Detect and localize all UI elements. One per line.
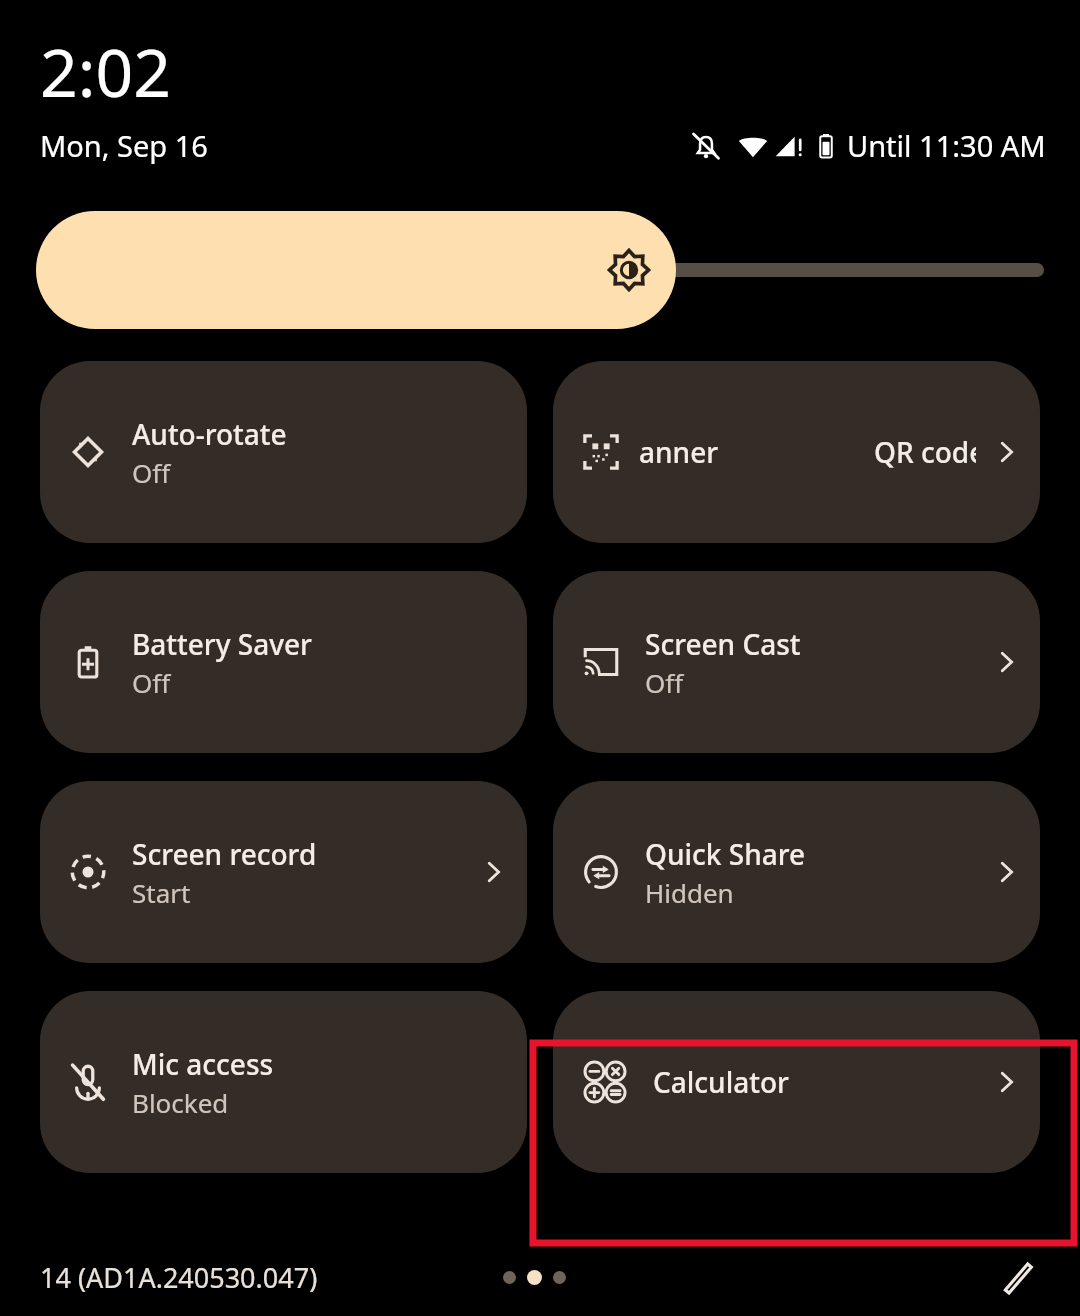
button[interactable]: Mic access	[40, 991, 527, 1173]
staticText: anner	[639, 433, 719, 471]
other: Battery	[811, 131, 841, 161]
staticText: Quick Share	[645, 835, 806, 873]
staticText: Mon, Sep 16	[40, 126, 208, 165]
staticText: QR code	[874, 433, 976, 471]
other: Mobile signal	[773, 130, 805, 162]
other: Open QR code scanner settings	[990, 436, 1022, 468]
other: Wi-Fi connected	[737, 130, 769, 162]
button[interactable]: Edit tiles	[998, 1257, 1038, 1297]
button[interactable]: Screen record	[40, 781, 527, 963]
staticText: Off	[132, 665, 171, 700]
staticText: Until 11:30 AM	[847, 126, 1046, 165]
staticText: Start	[132, 875, 191, 910]
other: Open Quick Share settings	[990, 856, 1022, 888]
staticText: Screen Cast	[645, 625, 801, 663]
button[interactable]: Quick Share	[553, 781, 1040, 963]
button[interactable]: Auto-rotate	[40, 361, 527, 543]
other: Open Screen record settings	[477, 856, 509, 888]
button[interactable]: Screen Cast	[553, 571, 1040, 753]
other: Open Screen Cast settings	[990, 646, 1022, 678]
staticText: Calculator	[653, 1063, 789, 1101]
staticText: Blocked	[132, 1085, 229, 1120]
staticText: 14 (AD1A.240530.047)	[40, 1259, 318, 1296]
button[interactable]: Calculator	[553, 991, 1040, 1173]
staticText: Hidden	[645, 875, 734, 910]
staticText: Mic access	[132, 1045, 274, 1083]
staticText: Battery Saver	[132, 625, 312, 663]
staticText: Auto-rotate	[132, 415, 287, 453]
staticText: 2:02	[40, 26, 171, 116]
button[interactable]: anner	[553, 361, 1040, 543]
staticText: Off	[645, 665, 684, 700]
button[interactable]: Battery Saver	[40, 571, 527, 753]
other: Open Calculator settings	[990, 1066, 1022, 1098]
other: Ringer silent	[689, 129, 723, 163]
button[interactable]: Brightness	[36, 211, 1044, 329]
staticText: Screen record	[132, 835, 317, 873]
staticText: Off	[132, 455, 171, 490]
